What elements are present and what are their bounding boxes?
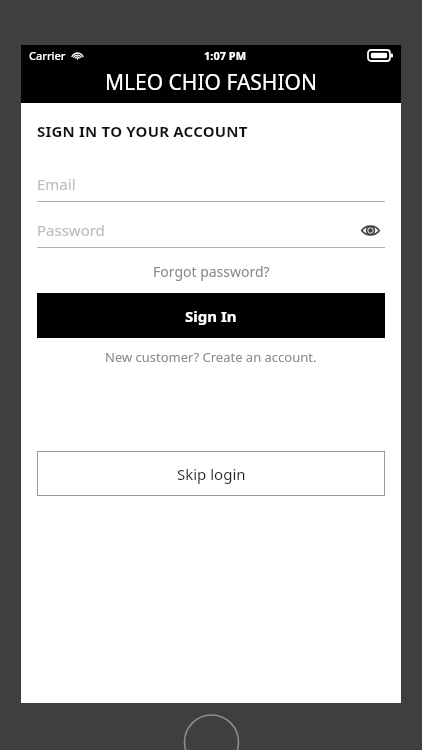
staticText: New customer? Create an account. [105,348,317,366]
staticText: MLEO CHIO FASHION [105,68,317,97]
button[interactable]: Skip login [37,451,385,496]
staticText: 1:07 PM [204,48,247,63]
staticText: Sign In [185,306,237,326]
button[interactable]: Sign In [37,293,385,338]
staticText: Forgot password? [153,262,270,281]
button[interactable]: Password [37,213,355,247]
staticText: Email [37,174,76,194]
button[interactable]: Forgot password? [37,260,385,282]
staticText: Password [37,220,105,240]
button[interactable]: New customer? Create an account. [37,347,385,367]
staticText: SIGN IN TO YOUR ACCOUNT [37,121,248,141]
button[interactable]: Email [37,167,385,201]
staticText: Carrier [29,48,66,63]
staticText: Skip login [177,464,246,484]
button[interactable]: Show password [355,215,385,245]
